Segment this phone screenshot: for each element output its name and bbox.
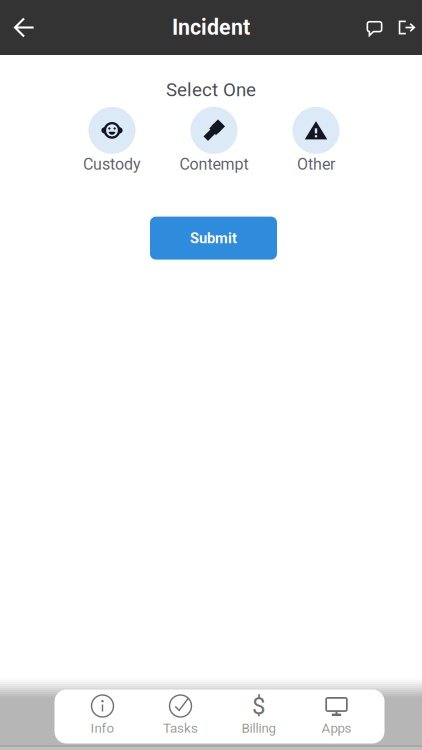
staticText: Billing [241,720,275,736]
staticText: Submit [190,229,237,247]
button[interactable]: Other [265,107,367,174]
button[interactable]: Info [63,689,141,743]
staticText: Info [90,720,114,736]
button[interactable]: Sign out [390,0,422,55]
button[interactable]: Back [3,0,45,55]
button[interactable]: Messages [359,0,390,55]
staticText: Tasks [163,720,198,736]
button[interactable]: Custody [61,107,163,174]
staticText: Incident [172,15,250,40]
button[interactable]: Submit [150,217,277,260]
staticText: $ [252,692,265,720]
staticText: Other [297,155,335,174]
staticText: Apps [321,720,351,736]
button[interactable]: $ [219,689,297,743]
button[interactable]: Tasks [141,689,219,743]
staticText: Select One [166,79,256,101]
staticText: Contempt [179,155,248,174]
staticText: Custody [83,155,141,174]
button[interactable]: Apps [297,689,375,743]
button[interactable]: Contempt [163,107,265,174]
